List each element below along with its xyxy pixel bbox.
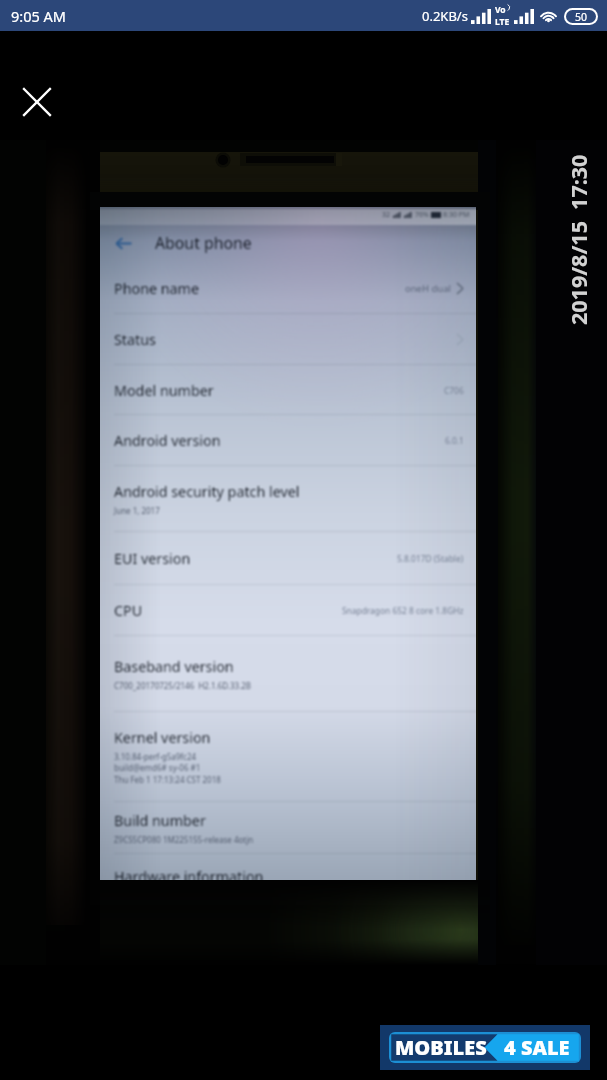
- button[interactable]: EUI version: [100, 532, 476, 585]
- button[interactable]: Baseband version: [100, 636, 476, 712]
- staticText: Android version: [114, 431, 221, 450]
- button[interactable]: Model number: [100, 365, 476, 415]
- staticText: About phone: [155, 232, 252, 254]
- staticText: Phone name: [114, 279, 200, 298]
- button[interactable]: Status: [100, 314, 476, 365]
- button[interactable]: Close: [11, 76, 63, 128]
- button[interactable]: Phone name: [100, 263, 476, 314]
- staticText: Vo: [495, 4, 506, 16]
- button[interactable]: CPU: [100, 585, 476, 636]
- staticText: C700_20170725/2146 H2.1.6D.33.2B: [114, 680, 252, 691]
- staticText: oneH dual: [405, 282, 451, 295]
- staticText: 0.2KB/s: [422, 7, 468, 25]
- button[interactable]: Build number: [100, 802, 476, 854]
- staticText: LTE: [495, 16, 510, 28]
- staticText: 6.0.1: [445, 435, 464, 446]
- staticText: Kernel version: [114, 728, 211, 747]
- staticText: 4 SALE: [504, 1034, 570, 1061]
- staticText: 3.10.84-perf-g5a9fc24 build@emd6# sy-06 …: [114, 751, 221, 786]
- button[interactable]: Mobiles4Sale watermark: [380, 1025, 590, 1070]
- staticText: 9:05 AM: [11, 6, 66, 26]
- staticText: 50: [575, 10, 588, 23]
- staticText: MOBILES: [395, 1034, 487, 1061]
- button[interactable]: Android security patch level: [100, 466, 476, 532]
- staticText: Hardware information: [114, 867, 264, 880]
- staticText: Status: [114, 330, 156, 349]
- staticText: CPU: [114, 601, 143, 620]
- button[interactable]: Kernel version: [100, 712, 476, 802]
- staticText: 76%: [415, 210, 429, 220]
- staticText: 8:30 PM: [443, 210, 470, 220]
- button[interactable]: Android version: [100, 415, 476, 466]
- staticText: EUI version: [114, 549, 191, 568]
- staticText: June 1, 2017: [114, 505, 160, 516]
- button[interactable]: About phone: [114, 223, 476, 263]
- staticText: 2019/8/15 17:30: [564, 154, 593, 325]
- staticText: 32: [382, 210, 391, 220]
- staticText: Android security patch level: [114, 482, 300, 501]
- staticText: 5.8.017D (Stable): [397, 553, 464, 564]
- staticText: Baseband version: [114, 657, 234, 676]
- staticText: Z9CS5CP080 1M225155-release 4otjn: [114, 834, 254, 845]
- staticText: Build number: [114, 811, 206, 830]
- staticText: Snapdragon 652 8 core 1.8GHz: [342, 605, 464, 616]
- staticText: C706: [444, 385, 464, 396]
- staticText: Model number: [114, 381, 214, 400]
- button[interactable]: Hardware information: [100, 854, 476, 880]
